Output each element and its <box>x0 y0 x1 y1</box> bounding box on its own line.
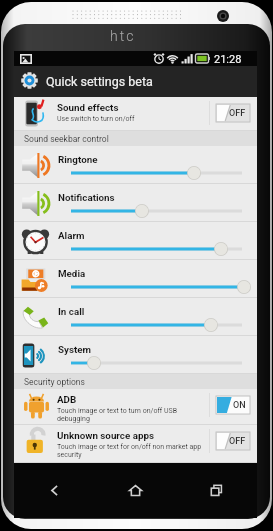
staticText: Touch image or text to turn on/off USB d… <box>57 407 207 423</box>
staticText: Unknown source apps <box>57 430 154 441</box>
staticText: OFF <box>229 436 246 447</box>
staticText: System <box>58 344 92 355</box>
staticText: Security options <box>24 377 85 387</box>
button[interactable]: In call <box>14 298 257 336</box>
staticText: Notifications <box>58 192 115 203</box>
button[interactable]: Unknown source apps <box>14 425 257 463</box>
button[interactable]: Sound effects <box>14 97 257 131</box>
button[interactable]: Alarm <box>14 222 257 260</box>
button[interactable]: Unknown source apps off <box>216 432 250 450</box>
staticText: Use switch to turn on/off <box>57 115 135 123</box>
button[interactable]: Ringtone <box>14 146 257 184</box>
staticText: Touch image or text for on/off non marke… <box>57 443 207 459</box>
staticText: ADB <box>57 394 77 405</box>
button[interactable]: Media <box>14 260 257 298</box>
staticText: Sound seekbar control <box>24 134 109 144</box>
staticText: ON <box>233 400 246 411</box>
staticText: OFF <box>229 108 246 119</box>
button[interactable]: Back <box>14 463 95 518</box>
staticText: In call <box>58 306 85 317</box>
staticText: htc <box>110 28 136 44</box>
staticText: Alarm <box>58 230 85 241</box>
button[interactable]: System <box>14 336 257 374</box>
staticText: Quick settings beta <box>46 74 153 89</box>
button[interactable]: Recent apps <box>176 463 257 518</box>
button[interactable]: Sound effects off <box>216 104 250 122</box>
staticText: Sound effects <box>57 102 119 113</box>
button[interactable]: ADB <box>14 389 257 425</box>
button[interactable]: ADB on <box>216 396 250 414</box>
button[interactable]: Quick settings beta <box>14 66 257 97</box>
staticText: 21:28 <box>214 53 242 66</box>
button[interactable]: Notifications <box>14 184 257 222</box>
staticText: Media <box>58 268 86 279</box>
staticText: Ringtone <box>58 154 98 165</box>
button[interactable]: Home <box>95 463 176 518</box>
